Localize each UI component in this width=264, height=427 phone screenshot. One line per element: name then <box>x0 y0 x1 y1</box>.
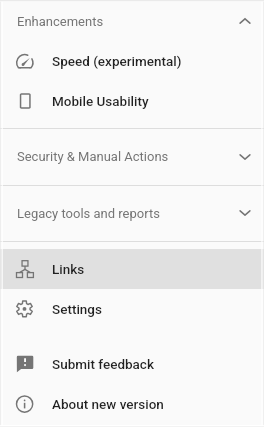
button[interactable]: Speed (experimental) <box>0 41 264 81</box>
staticText: Links <box>52 261 85 277</box>
staticText: Security & Manual Actions <box>17 149 169 164</box>
button[interactable]: Mobile Usability <box>0 81 264 121</box>
staticText: Mobile Usability <box>52 93 149 109</box>
button[interactable]: Links <box>0 249 264 289</box>
staticText: Settings <box>52 301 102 317</box>
staticText: Speed (experimental) <box>52 53 182 69</box>
button[interactable]: Submit feedback <box>0 344 264 384</box>
staticText: Submit feedback <box>52 356 154 372</box>
button[interactable]: Settings <box>0 289 264 329</box>
staticText: Enhancements <box>17 14 104 29</box>
staticText: Legacy tools and reports <box>17 206 160 221</box>
staticText: About new version <box>52 396 164 412</box>
button[interactable]: Enhancements <box>0 0 264 43</box>
button[interactable]: About new version <box>0 384 264 424</box>
button[interactable]: Legacy tools and reports <box>0 185 264 241</box>
button[interactable]: Security & Manual Actions <box>0 128 264 185</box>
